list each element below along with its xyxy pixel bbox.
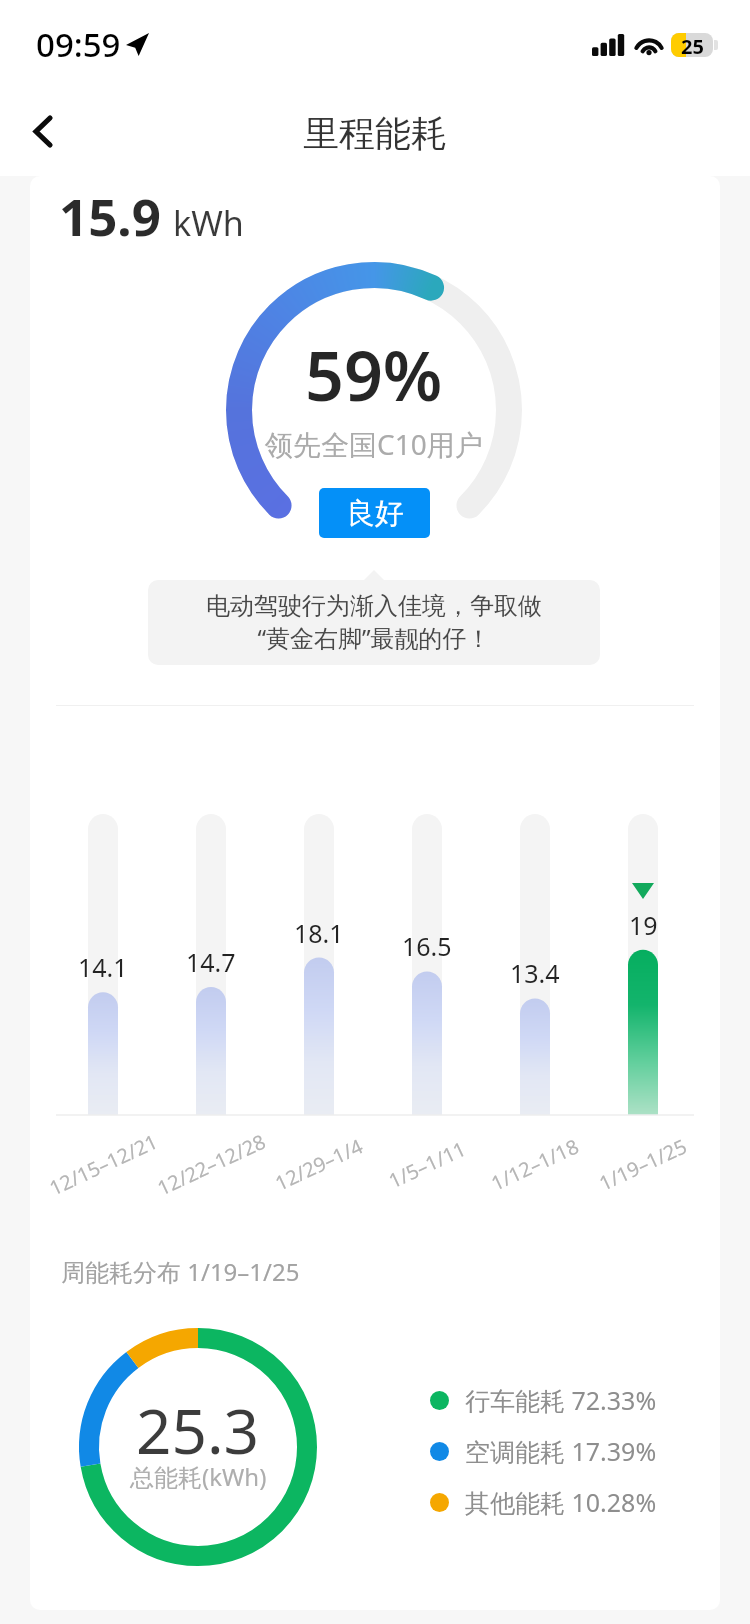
staticText: 领先全国C10用户 — [265, 425, 483, 463]
staticText: 25.3 — [136, 1388, 260, 1472]
staticText: 25 — [681, 33, 704, 57]
staticText: 1/12–1/18 — [487, 1132, 583, 1197]
staticText: 19 — [629, 908, 658, 942]
staticText: 15.9 — [59, 181, 161, 250]
staticText: 14.7 — [186, 945, 236, 979]
staticText: 09:59 — [36, 22, 121, 67]
staticText: 13.4 — [510, 956, 560, 990]
staticText: 1/5–1/11 — [384, 1135, 471, 1194]
staticText: 18.1 — [294, 916, 344, 950]
staticText: 12/29–1/4 — [271, 1132, 367, 1197]
staticText: 1/19–1/25 — [595, 1132, 691, 1197]
staticText: 里程能耗 — [303, 111, 447, 156]
staticText: 良好 — [346, 495, 404, 532]
staticText: 59% — [305, 328, 443, 421]
staticText: 周能耗分布 1/19–1/25 — [61, 1255, 300, 1288]
staticText: 12/15–12/21 — [45, 1127, 162, 1201]
staticText: 电动驾驶行为渐入佳境，争取做 “黄金右脚”最靓的仔！ — [206, 591, 542, 654]
button[interactable]: 良好 — [319, 488, 430, 538]
staticText: 空调能耗 17.39% — [465, 1434, 657, 1468]
staticText: 12/22–12/28 — [153, 1127, 270, 1201]
button[interactable]: Back — [19, 107, 67, 155]
staticText: 16.5 — [402, 929, 452, 963]
staticText: kWh — [173, 200, 244, 246]
staticText: 总能耗(kWh) — [130, 1460, 267, 1493]
staticText: 14.1 — [78, 950, 128, 984]
staticText: 其他能耗 10.28% — [465, 1485, 657, 1519]
staticText: 行车能耗 72.33% — [465, 1383, 657, 1417]
